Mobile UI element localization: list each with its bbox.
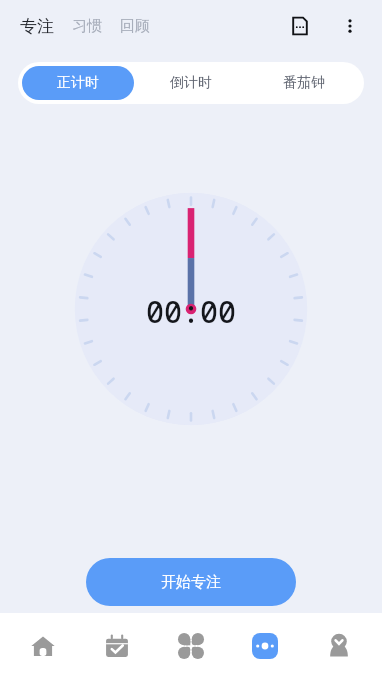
staticText: 00:00 — [146, 291, 236, 332]
staticText: 习惯 — [72, 17, 102, 36]
button[interactable]: 正计时 — [22, 66, 134, 100]
staticText: 倒计时 — [170, 74, 212, 92]
button[interactable]: Home — [12, 618, 74, 674]
button[interactable]: 回顾 — [118, 15, 152, 38]
button[interactable]: 习惯 — [70, 15, 104, 38]
button[interactable]: More options — [332, 8, 368, 44]
button[interactable]: 番茄钟 — [247, 66, 360, 100]
button[interactable]: 倒计时 — [134, 66, 247, 100]
staticText: 专注 — [20, 16, 54, 37]
button[interactable]: Notes — [282, 8, 318, 44]
staticText: 回顾 — [120, 17, 150, 36]
staticText: 开始专注 — [161, 573, 221, 592]
button[interactable]: Profile — [308, 618, 370, 674]
staticText: 番茄钟 — [283, 74, 325, 92]
button[interactable]: Habits — [160, 618, 222, 674]
button[interactable]: 开始专注 — [86, 558, 296, 606]
button[interactable]: Calendar — [86, 618, 148, 674]
button[interactable]: 专注 — [18, 14, 56, 39]
staticText: 正计时 — [57, 74, 99, 92]
button[interactable]: Focus — [234, 618, 296, 674]
